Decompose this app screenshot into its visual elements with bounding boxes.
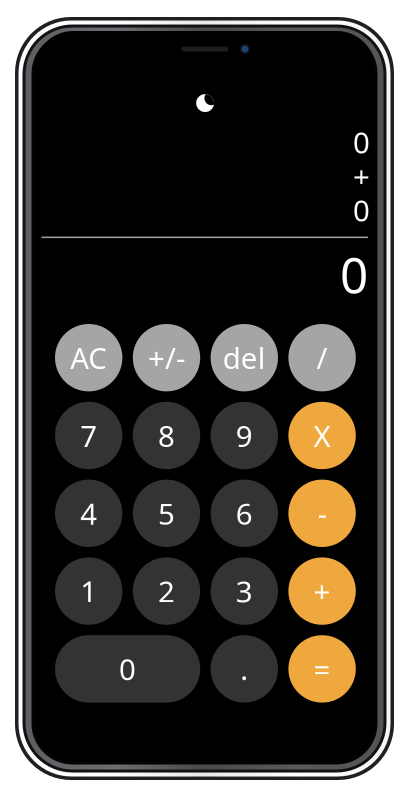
- button[interactable]: 3: [211, 557, 278, 625]
- button[interactable]: -: [288, 480, 356, 547]
- staticText: =: [314, 649, 331, 688]
- button[interactable]: 2: [133, 557, 200, 625]
- staticText: /: [317, 338, 328, 377]
- staticText: 1: [80, 572, 97, 611]
- button[interactable]: 0: [55, 635, 200, 703]
- staticText: +: [353, 156, 370, 195]
- button[interactable]: Toggle dark mode: [186, 84, 224, 122]
- button[interactable]: AC: [55, 324, 122, 391]
- staticText: 8: [158, 416, 175, 455]
- staticText: 2: [158, 572, 175, 611]
- staticText: X: [314, 416, 331, 455]
- button[interactable]: +: [288, 557, 356, 625]
- staticText: 6: [236, 494, 253, 533]
- staticText: 3: [236, 572, 253, 611]
- staticText: 9: [236, 416, 253, 455]
- button[interactable]: del: [211, 324, 278, 391]
- button[interactable]: 8: [133, 402, 200, 469]
- button[interactable]: 1: [55, 557, 122, 625]
- button[interactable]: +/-: [133, 324, 200, 391]
- button[interactable]: 6: [211, 480, 278, 547]
- staticText: 4: [80, 494, 97, 533]
- staticText: 0: [119, 649, 136, 688]
- button[interactable]: =: [288, 635, 356, 703]
- staticText: 5: [158, 494, 175, 533]
- staticText: 0: [353, 190, 370, 229]
- button[interactable]: 9: [211, 402, 278, 469]
- staticText: 0: [353, 122, 370, 161]
- button[interactable]: /: [288, 324, 356, 391]
- button[interactable]: .: [211, 635, 278, 703]
- staticText: del: [223, 338, 266, 377]
- staticText: +/-: [148, 338, 185, 377]
- button[interactable]: 7: [55, 402, 122, 469]
- staticText: 0: [340, 241, 368, 307]
- staticText: .: [240, 649, 248, 688]
- staticText: -: [318, 494, 327, 533]
- button[interactable]: 5: [133, 480, 200, 547]
- button[interactable]: 4: [55, 480, 122, 547]
- staticText: 7: [80, 416, 97, 455]
- staticText: AC: [70, 338, 107, 377]
- button[interactable]: X: [288, 402, 356, 469]
- staticText: +: [314, 572, 331, 611]
